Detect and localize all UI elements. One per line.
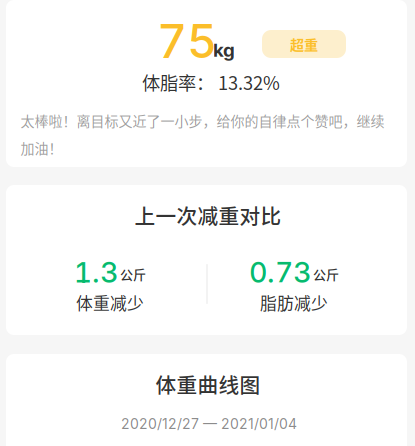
staticText: 体重减少: [76, 290, 144, 315]
staticText: 1.3: [74, 255, 118, 289]
button[interactable]: 超重: [262, 30, 346, 58]
staticText: 太棒啦！离目标又近了一小步，给你的自律点个赞吧，继续加油！: [20, 110, 384, 158]
staticText: 超重: [290, 34, 318, 54]
staticText: 2020/12/27 — 2021/01/04: [121, 415, 297, 432]
staticText: 公斤: [120, 264, 146, 283]
staticText: 脂肪减少: [260, 290, 328, 315]
staticText: 75: [157, 13, 217, 69]
staticText: kg: [213, 39, 235, 61]
staticText: 上一次减重对比: [134, 200, 281, 230]
staticText: 公斤: [313, 264, 339, 283]
staticText: 体重曲线图: [155, 369, 260, 399]
staticText: 0.73: [249, 255, 311, 289]
staticText: 体脂率： 13.32%: [142, 69, 280, 95]
